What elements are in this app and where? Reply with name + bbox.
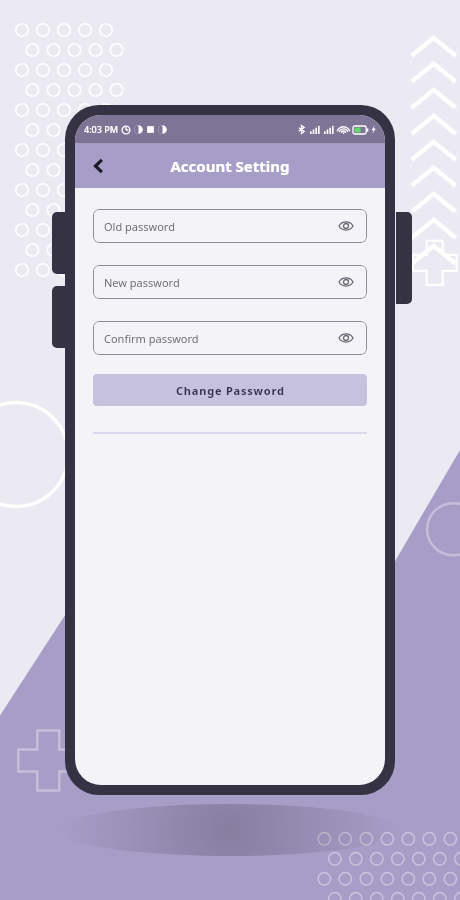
staticText: Old password: [104, 219, 175, 234]
button[interactable]: New password: [93, 265, 367, 299]
staticText: New password: [104, 275, 180, 290]
button[interactable]: Old password: [93, 209, 367, 243]
staticText: Account Setting: [170, 156, 290, 176]
staticText: Change Password: [176, 383, 285, 398]
button[interactable]: Show password: [336, 216, 356, 236]
staticText: 4:03 PM: [84, 123, 118, 135]
button[interactable]: Confirm password: [93, 321, 367, 355]
button[interactable]: Back: [81, 148, 117, 184]
button[interactable]: Show password: [336, 272, 356, 292]
staticText: Confirm password: [104, 331, 199, 346]
button[interactable]: Show password: [336, 328, 356, 348]
button[interactable]: Change Password: [93, 374, 367, 406]
